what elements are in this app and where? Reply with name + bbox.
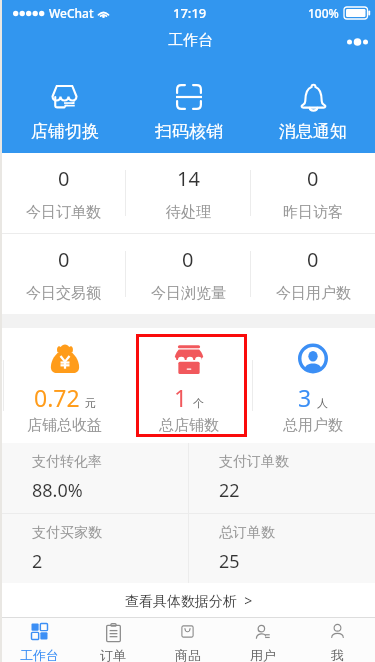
button[interactable]: 0	[251, 153, 375, 233]
staticText: 支付订单数	[219, 453, 289, 471]
staticText: 店铺切换	[31, 121, 99, 142]
staticText: 店铺总收益	[27, 416, 102, 435]
staticText: WeChat	[49, 5, 94, 21]
staticText: 今日交易额	[26, 284, 101, 303]
button[interactable]: 消息通知	[251, 56, 375, 153]
staticText: 0	[58, 165, 70, 192]
button[interactable]: More options	[339, 27, 375, 55]
button[interactable]: 商品	[150, 618, 225, 662]
button[interactable]: 14	[126, 153, 250, 233]
staticText: 我	[331, 647, 344, 662]
staticText: 总店铺数	[159, 416, 219, 435]
staticText: 工作台	[168, 31, 213, 50]
staticText: 昨日访客	[283, 203, 343, 222]
button[interactable]: 0	[2, 153, 125, 233]
staticText: 100%	[308, 5, 339, 21]
staticText: 14	[177, 165, 200, 192]
staticText: 0.72	[34, 382, 80, 413]
button[interactable]: 用户	[225, 618, 300, 662]
button[interactable]: 总订单数	[189, 514, 375, 583]
button[interactable]: 查看具体数据分析 >	[2, 583, 375, 617]
staticText: 17:19	[173, 4, 207, 22]
staticText: 扫码核销	[155, 121, 223, 142]
staticText: 3	[298, 382, 312, 413]
button[interactable]: 我	[300, 618, 375, 662]
staticText: 人	[317, 396, 328, 410]
button[interactable]: 工作台	[2, 618, 76, 662]
staticText: 总订单数	[219, 524, 275, 542]
button[interactable]: 0.72	[2, 328, 127, 443]
staticText: 88.0%	[32, 478, 83, 503]
staticText: 今日浏览量	[151, 284, 226, 303]
staticText: 今日订单数	[26, 203, 101, 222]
button[interactable]: 支付订单数	[189, 443, 375, 513]
staticText: 22	[219, 478, 240, 503]
staticText: 2	[32, 549, 43, 574]
staticText: 待处理	[166, 203, 211, 222]
staticText: 0	[58, 246, 70, 273]
staticText: 个	[193, 396, 204, 410]
staticText: 消息通知	[279, 121, 347, 142]
button[interactable]: 店铺切换	[2, 56, 127, 153]
button[interactable]: 0	[126, 234, 250, 314]
staticText: 订单	[100, 647, 126, 662]
button[interactable]: 扫码核销	[127, 56, 251, 153]
button[interactable]: 3	[251, 328, 375, 443]
button[interactable]: 支付转化率	[2, 443, 188, 513]
staticText: 0	[307, 165, 319, 192]
staticText: 1	[174, 382, 188, 413]
button[interactable]: 支付买家数	[2, 514, 188, 583]
staticText: 今日用户数	[276, 284, 351, 303]
staticText: 0	[307, 246, 319, 273]
staticText: 25	[219, 549, 240, 574]
staticText: 总用户数	[283, 416, 343, 435]
button[interactable]: 0	[2, 234, 125, 314]
staticText: 支付买家数	[32, 524, 102, 542]
staticText: 商品	[175, 647, 201, 662]
button[interactable]: 1	[127, 328, 251, 443]
staticText: 元	[85, 396, 96, 410]
staticText: 支付转化率	[32, 453, 102, 471]
staticText: 查看具体数据分析 >	[125, 591, 253, 610]
staticText: 0	[182, 246, 194, 273]
button[interactable]: 0	[251, 234, 375, 314]
button[interactable]: 订单	[76, 618, 150, 662]
staticText: 工作台	[20, 647, 59, 662]
staticText: 用户	[250, 647, 276, 662]
